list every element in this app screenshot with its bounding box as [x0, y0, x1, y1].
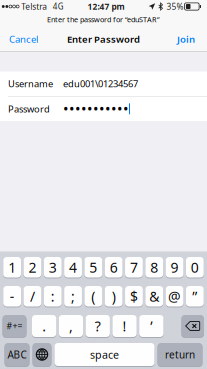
staticText: 8 — [150, 258, 158, 277]
button[interactable]: ABC — [4, 343, 29, 366]
staticText: 1 — [8, 258, 16, 277]
button[interactable]: Next keyboard — [32, 343, 51, 366]
staticText: #+= — [6, 320, 22, 332]
staticText: , — [69, 316, 73, 336]
staticText: return — [165, 348, 195, 361]
staticText: edu001\01234567 — [63, 78, 138, 90]
staticText: Password — [8, 103, 50, 115]
staticText: 6 — [110, 258, 118, 277]
staticText: ••••••••••• — [63, 99, 129, 119]
staticText: : — [51, 287, 55, 306]
staticText: 2 — [28, 258, 36, 277]
staticText: Enter the password for “eduSTAR” — [47, 15, 160, 24]
staticText: Join — [177, 32, 195, 46]
staticText: 0 — [191, 258, 199, 277]
staticText: @ — [168, 287, 181, 306]
button[interactable]: / — [23, 286, 41, 306]
staticText: 9 — [170, 258, 178, 277]
staticText: ” — [192, 287, 197, 306]
button[interactable]: : — [44, 286, 62, 306]
button[interactable]: 0 — [186, 257, 204, 277]
button[interactable]: Join — [177, 32, 195, 46]
button[interactable]: & — [145, 286, 163, 306]
button[interactable]: ( — [84, 286, 102, 306]
staticText: . — [42, 316, 46, 336]
button[interactable]: ! — [112, 315, 137, 337]
button[interactable]: ” — [186, 286, 204, 306]
staticText: ! — [123, 316, 127, 336]
staticText: ; — [71, 287, 75, 306]
staticText: Cancel — [9, 32, 38, 46]
staticText: ( — [91, 287, 95, 306]
button[interactable]: ) — [105, 286, 122, 306]
button[interactable]: - — [3, 286, 21, 306]
staticText: 3 — [49, 258, 57, 277]
button[interactable]: return — [157, 343, 202, 366]
staticText: / — [30, 287, 35, 306]
button[interactable]: 6 — [105, 257, 122, 277]
staticText: $ — [130, 287, 138, 306]
button[interactable]: ; — [64, 286, 82, 306]
button[interactable]: $ — [125, 286, 143, 306]
staticText: 7 — [130, 258, 138, 277]
button[interactable]: 3 — [44, 257, 62, 277]
button[interactable]: 2 — [23, 257, 41, 277]
button[interactable]: , — [59, 315, 83, 337]
staticText: - — [10, 287, 15, 306]
button[interactable]: Delete — [181, 315, 204, 337]
button[interactable]: 8 — [145, 257, 163, 277]
button[interactable]: . — [32, 315, 56, 337]
staticText: & — [149, 287, 159, 306]
button[interactable]: #+= — [2, 315, 26, 337]
button[interactable]: 9 — [166, 257, 183, 277]
button[interactable]: Cancel — [9, 32, 38, 46]
staticText: 4 — [69, 258, 77, 277]
button[interactable]: 7 — [125, 257, 143, 277]
button[interactable]: @ — [166, 286, 183, 306]
staticText: ? — [95, 316, 101, 336]
button[interactable]: space — [54, 343, 154, 366]
button[interactable]: ’ — [139, 315, 163, 337]
staticText: Username — [8, 78, 53, 90]
button[interactable]: 1 — [3, 257, 21, 277]
staticText: 12:47 pm — [88, 1, 125, 12]
staticText: Enter Password — [67, 32, 140, 46]
button[interactable]: 4 — [64, 257, 82, 277]
staticText: ) — [112, 287, 116, 306]
button[interactable]: 5 — [84, 257, 102, 277]
staticText: ABC — [7, 348, 26, 361]
staticText: 5 — [89, 258, 97, 277]
staticText: ’ — [150, 316, 152, 336]
staticText: space — [90, 347, 119, 362]
button[interactable]: ? — [86, 315, 110, 337]
staticText: 4G — [53, 1, 64, 12]
staticText: 35% — [167, 1, 184, 12]
staticText: Telstra — [21, 1, 47, 12]
